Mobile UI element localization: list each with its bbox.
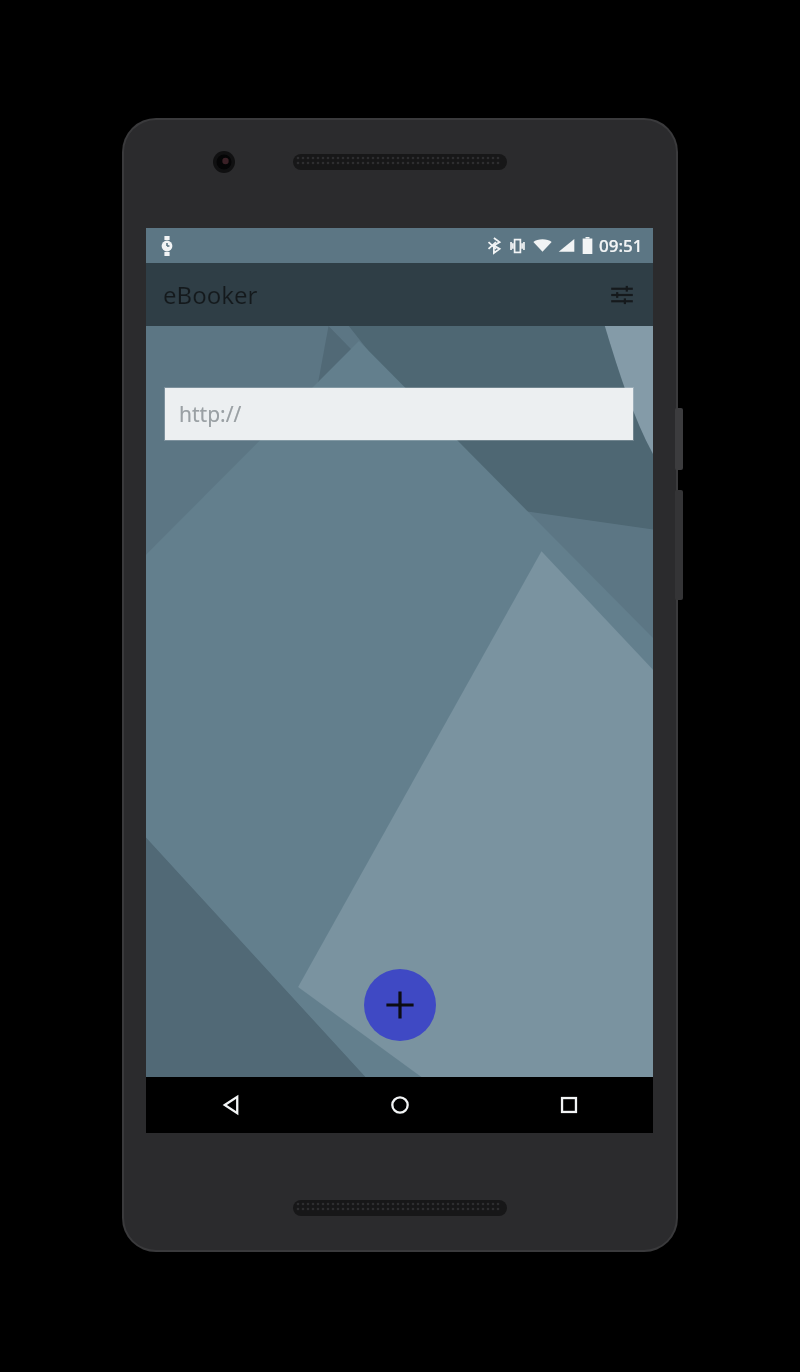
button[interactable]: Back	[146, 1077, 315, 1133]
button[interactable]: http://	[165, 388, 633, 440]
button[interactable]: Add bookmark	[364, 969, 436, 1041]
button[interactable]: Recent apps	[484, 1077, 653, 1133]
staticText: eBooker	[163, 278, 258, 311]
staticText: 09:51	[599, 234, 643, 257]
staticText: http://	[179, 400, 242, 429]
button[interactable]: Home	[315, 1077, 484, 1133]
button[interactable]: Settings	[599, 272, 645, 318]
